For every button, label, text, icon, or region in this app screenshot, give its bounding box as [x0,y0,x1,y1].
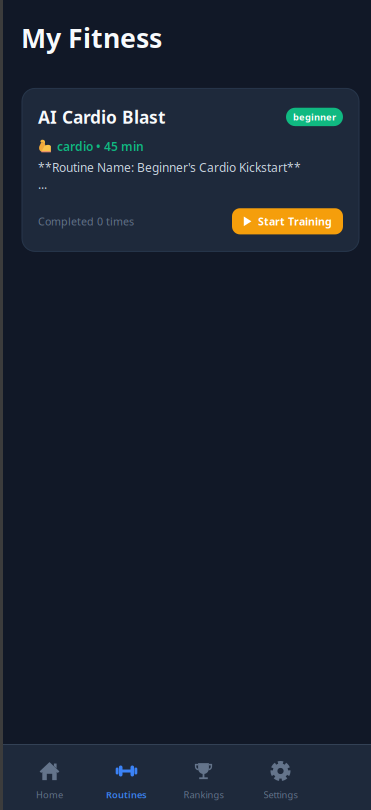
staticText: cardio • 45 min [57,138,144,154]
staticText: ... [38,176,47,192]
staticText: Routines [106,788,147,801]
staticText: beginner [293,111,336,123]
staticText: Settings [263,788,297,801]
staticText: My Fitness [21,20,162,55]
staticText: Rankings [183,788,223,801]
staticText: Start Training [258,214,332,228]
button[interactable]: Home [11,744,88,810]
button[interactable]: Routines [88,744,165,810]
staticText: Home [36,788,63,801]
staticText: AI Cardio Blast [38,105,166,128]
button[interactable]: Start Training [232,208,343,234]
button[interactable]: Settings [242,744,319,810]
staticText: **Routine Name: Beginner's Cardio Kickst… [38,159,301,175]
button[interactable]: Rankings [165,744,242,810]
staticText: Completed 0 times [38,214,134,228]
